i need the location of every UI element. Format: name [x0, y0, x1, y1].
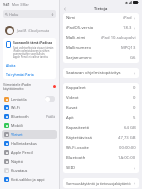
staticText: Näyttö — [11, 159, 23, 164]
button[interactable]: Apple Pencil — [2, 148, 57, 157]
button[interactable]: Aloita — [6, 63, 16, 68]
button[interactable]: Nimi — [63, 13, 139, 23]
staticText: Wi-Fi — [11, 105, 20, 110]
staticText: Varmuuskäytäntö ja tietosuojakäytäntö — [66, 181, 131, 186]
button[interactable]: Mobiili — [2, 121, 57, 130]
staticText: 00:00:00 — [119, 145, 136, 151]
staticText: Saatavan ohjelmistopäivitys — [66, 70, 121, 76]
staticText: Wi-Fi-osoite — [66, 145, 89, 151]
button[interactable]: Lentotila — [2, 94, 57, 103]
staticText: iPadOS-versio — [66, 25, 94, 31]
staticText: 1A:0C:00 — [118, 155, 136, 161]
button[interactable]: Varmuuskäytäntö ja tietosuojakäytäntö — [63, 178, 139, 188]
button[interactable]: Kuvat — [63, 103, 139, 113]
staticText: Apple Pencil — [11, 150, 33, 155]
staticText: Nimi — [66, 15, 76, 21]
staticText: 18.3 — [123, 25, 132, 31]
staticText: Yleiset — [11, 132, 23, 137]
staticText: G6 — [130, 55, 136, 61]
staticText: Videot — [66, 95, 79, 101]
staticText: SEID — [66, 165, 76, 171]
staticText: MPQ13 — [121, 45, 136, 51]
staticText: Tietoja — [94, 6, 108, 11]
button[interactable]: Back — [62, 6, 68, 12]
staticText: Bluetooth — [66, 155, 86, 161]
staticText: iPad 10-sukupolvi — [101, 35, 136, 41]
button[interactable]: Bluetooth — [2, 112, 57, 121]
staticText: 0 — [133, 95, 136, 101]
staticText: Kapasiteetti — [66, 125, 90, 131]
staticText: Sarjanumero — [66, 55, 92, 61]
staticText: Mobiili — [11, 123, 23, 128]
staticText: 0 — [133, 85, 136, 91]
staticText: 0 — [133, 105, 136, 111]
staticText: Haku — [9, 12, 19, 17]
button[interactable]: iPadOS-versio — [63, 23, 139, 33]
staticText: iPad — [123, 15, 132, 21]
button[interactable]: Videot — [63, 93, 139, 103]
staticText: Hallintakeskus — [11, 141, 37, 146]
staticText: Malli-nimi — [66, 35, 86, 41]
staticText: 64 GB — [124, 125, 136, 131]
staticText: Kuvataus — [11, 168, 28, 173]
button[interactable]: Saatavan ohjelmistopäivitys — [63, 68, 139, 78]
button[interactable]: Wi-Fi — [2, 103, 57, 112]
staticText: 5 — [133, 115, 136, 121]
button[interactable]: Sarjanumero — [63, 53, 139, 63]
staticText: Suoraanlit tämä iPadissa — [13, 41, 53, 45]
staticText: 47,73 GB — [118, 135, 136, 141]
staticText: Päällä — [46, 115, 55, 119]
staticText: Lentotila — [11, 97, 27, 102]
button[interactable]: Yleiset — [2, 130, 57, 139]
button[interactable]: Bluetooth — [63, 153, 139, 163]
button[interactable]: Apit — [63, 113, 139, 123]
button[interactable]: Wi-Fi-osoite — [63, 143, 139, 153]
button[interactable]: Haku — [3, 10, 56, 18]
button[interactable]: Viimeistele iPadin käyttöönotto — [0, 82, 59, 91]
staticText: Apit — [66, 115, 74, 121]
button[interactable]: Hallintakeskus — [2, 139, 57, 148]
button[interactable]: Mallinumero — [63, 43, 139, 53]
button[interactable]: Kuvataus — [2, 166, 57, 175]
staticText: Saat vaihtoehtoisia sivuun tämän iPadin … — [13, 46, 54, 58]
staticText: Kuvat — [66, 105, 78, 111]
button[interactable]: Koti-valikko ja appi — [2, 175, 57, 184]
staticText: Jussi M. iCloud ja muuta — [17, 29, 50, 33]
staticText: Mallinumero — [66, 45, 92, 51]
staticText: 9:41 — [3, 2, 10, 6]
button[interactable]: SEID — [63, 163, 139, 173]
button[interactable]: Malli-nimi — [63, 33, 139, 43]
staticText: Koti-valikko ja appi — [11, 177, 45, 182]
button[interactable]: Tai ryhmäsi Paria — [6, 72, 34, 77]
button[interactable]: Käytettävissä — [63, 133, 139, 143]
staticText: Bluetooth — [11, 114, 29, 119]
button[interactable]: Näyttö — [2, 157, 57, 166]
button[interactable]: Kapasiteetti — [63, 123, 139, 133]
staticText: Käytettävissä — [66, 135, 92, 141]
staticText: Mon 3 Mar — [12, 2, 29, 6]
staticText: Viimeistele iPadin käyttöönotto — [3, 82, 32, 91]
button[interactable]: Kappaleet — [63, 83, 139, 93]
button[interactable]: Jussi M. iCloud ja muuta — [0, 26, 59, 35]
staticText: Kappaleet — [66, 85, 86, 91]
